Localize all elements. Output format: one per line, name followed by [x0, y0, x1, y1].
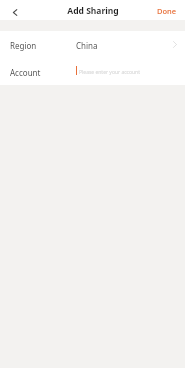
staticText: China	[76, 40, 98, 51]
staticText: Done	[157, 6, 177, 16]
button[interactable]: Done	[147, 2, 185, 19]
staticText: Account	[10, 67, 41, 78]
button[interactable]: Back	[7, 4, 23, 20]
staticText: Region	[10, 40, 37, 51]
staticText: Please enter your account	[79, 69, 141, 76]
button[interactable]: Region	[0, 31, 185, 58]
staticText: Add Sharing	[67, 5, 119, 17]
button[interactable]: Account	[0, 58, 185, 85]
